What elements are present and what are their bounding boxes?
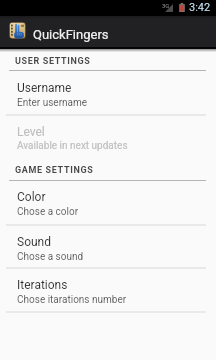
- staticText: 3G: [162, 2, 170, 9]
- staticText: Iterations: [17, 278, 68, 292]
- button[interactable]: [0, 225, 216, 267]
- staticText: USER SETTINGS: [15, 56, 91, 67]
- staticText: QuickFingers: [33, 27, 109, 42]
- button[interactable]: [0, 181, 216, 224]
- staticText: Color: [17, 190, 46, 204]
- button[interactable]: [0, 115, 216, 158]
- staticText: Chose a sound: [17, 251, 84, 263]
- staticText: Level: [17, 125, 45, 139]
- button[interactable]: [0, 268, 216, 311]
- staticText: Username: [17, 81, 72, 95]
- staticText: Chose itarations number: [17, 294, 127, 306]
- staticText: Chose a color: [17, 206, 79, 218]
- staticText: GAME SETTINGS: [15, 165, 94, 176]
- button[interactable]: [0, 71, 216, 114]
- staticText: 3:42: [189, 1, 211, 14]
- staticText: Available in next updates: [17, 140, 128, 152]
- staticText: Enter username: [17, 97, 88, 109]
- staticText: Sound: [17, 235, 51, 249]
